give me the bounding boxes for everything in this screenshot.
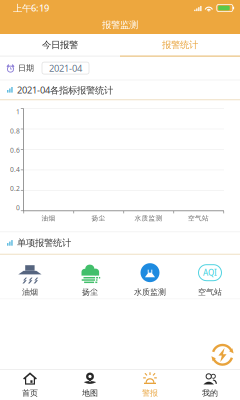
staticText: 首页 bbox=[22, 388, 38, 398]
staticText: 2021-04 bbox=[49, 62, 82, 74]
button[interactable]: 刷新 bbox=[207, 342, 238, 367]
button[interactable]: 警报 bbox=[120, 370, 180, 400]
staticText: 扬尘 bbox=[82, 287, 98, 297]
staticText: 单项报警统计 bbox=[17, 237, 71, 249]
button[interactable]: 油烟 bbox=[0, 261, 60, 297]
staticText: 水质监测 bbox=[134, 287, 166, 297]
staticText: 0 bbox=[16, 203, 20, 212]
button[interactable]: 2021-04 bbox=[42, 62, 89, 74]
staticText: 报警统计 bbox=[162, 39, 198, 51]
staticText: 警报 bbox=[142, 388, 158, 398]
staticText: 0.4 bbox=[10, 165, 20, 174]
staticText: 上午6:19 bbox=[13, 2, 49, 14]
staticText: 今日报警 bbox=[42, 39, 78, 51]
staticText: 0.8 bbox=[10, 126, 20, 135]
staticText: 空气站 bbox=[198, 287, 222, 297]
button[interactable]: 报警统计 bbox=[120, 34, 240, 56]
staticText: 报警监测 bbox=[102, 19, 138, 31]
staticText: 水质监测 bbox=[134, 214, 162, 222]
button[interactable]: 地图 bbox=[60, 370, 120, 400]
staticText: 我的 bbox=[202, 388, 218, 398]
staticText: 油烟 bbox=[41, 214, 55, 222]
staticText: 日期 bbox=[18, 63, 34, 73]
button[interactable]: 首页 bbox=[0, 370, 60, 400]
staticText: 0.2 bbox=[10, 184, 20, 193]
button[interactable]: 我的 bbox=[180, 370, 240, 400]
staticText: 1 bbox=[16, 107, 20, 116]
button[interactable]: 扬尘 bbox=[60, 261, 120, 297]
button[interactable]: 水质监测 bbox=[120, 261, 180, 297]
staticText: 2021-04各指标报警统计 bbox=[17, 84, 113, 96]
button[interactable]: 今日报警 bbox=[0, 34, 120, 56]
button[interactable]: AQI bbox=[180, 261, 240, 297]
staticText: AQI bbox=[203, 267, 217, 278]
staticText: 油烟 bbox=[22, 287, 38, 297]
staticText: 扬尘 bbox=[91, 214, 105, 222]
staticText: 0.6 bbox=[10, 146, 20, 155]
staticText: 空气站 bbox=[188, 214, 209, 222]
staticText: 地图 bbox=[82, 388, 98, 398]
